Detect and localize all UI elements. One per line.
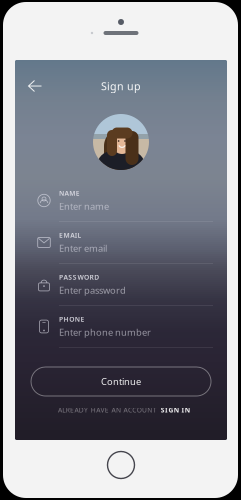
button[interactable]: Profile photo [93, 114, 149, 170]
staticText: Sign up [101, 79, 141, 93]
staticText: PHONE [59, 315, 84, 323]
staticText: Enter email [59, 242, 107, 254]
staticText: SIGN IN [161, 406, 190, 414]
staticText: NAME [59, 189, 80, 197]
button[interactable]: Back [20, 73, 50, 99]
staticText: Enter password [59, 284, 126, 296]
button[interactable]: Continue [31, 367, 211, 396]
staticText: Continue [101, 375, 141, 388]
staticText: ALREADY HAVE AN ACCOUNT [58, 406, 157, 414]
staticText: EMAIL [59, 231, 81, 239]
button[interactable]: EMAIL [29, 222, 213, 264]
button[interactable]: PHONE [29, 306, 213, 348]
staticText: PASSWORD [59, 273, 99, 281]
staticText: Enter phone number [59, 326, 151, 338]
button[interactable]: ALREADY HAVE AN ACCOUNT [58, 404, 190, 416]
button[interactable]: NAME [29, 180, 213, 222]
staticText: Enter name [59, 200, 109, 212]
button[interactable]: PASSWORD [29, 264, 213, 306]
